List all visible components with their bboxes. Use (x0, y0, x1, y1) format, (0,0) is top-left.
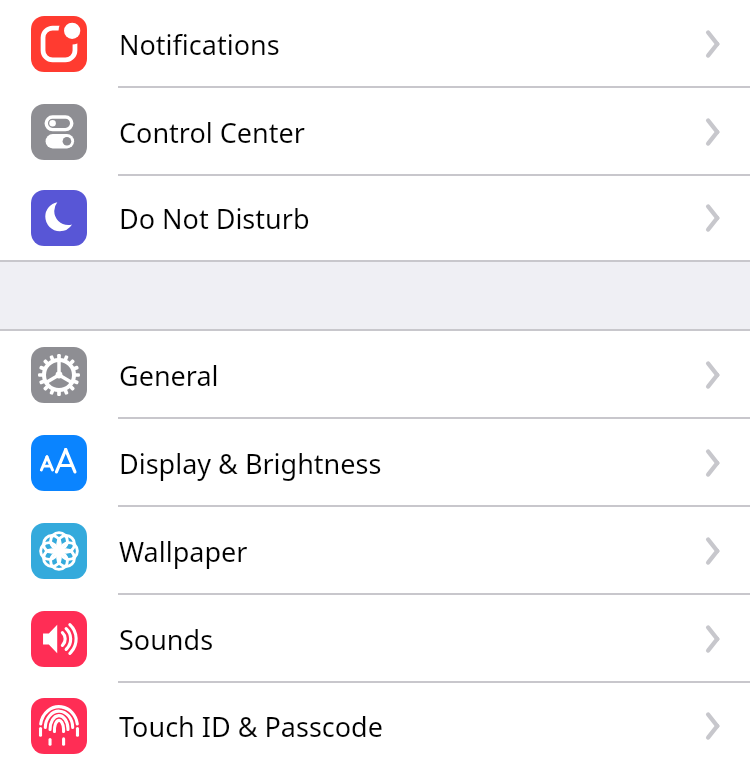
staticText: Wallpaper (119, 533, 248, 570)
staticText: General (119, 357, 219, 394)
button[interactable]: Notifications (0, 0, 750, 88)
staticText: Display & Brightness (119, 445, 382, 482)
staticText: Control Center (119, 114, 305, 151)
button[interactable]: Do Not Disturb (0, 176, 750, 260)
button[interactable]: Wallpaper (0, 507, 750, 595)
button[interactable]: Control Center (0, 88, 750, 176)
button[interactable]: Display & Brightness (0, 419, 750, 507)
button[interactable]: Sounds (0, 595, 750, 683)
staticText: Notifications (119, 26, 280, 63)
staticText: Sounds (119, 621, 214, 658)
staticText: Do Not Disturb (119, 200, 310, 237)
button[interactable]: General (0, 331, 750, 419)
button[interactable]: Touch ID & Passcode (0, 683, 750, 769)
staticText: Touch ID & Passcode (119, 708, 383, 745)
